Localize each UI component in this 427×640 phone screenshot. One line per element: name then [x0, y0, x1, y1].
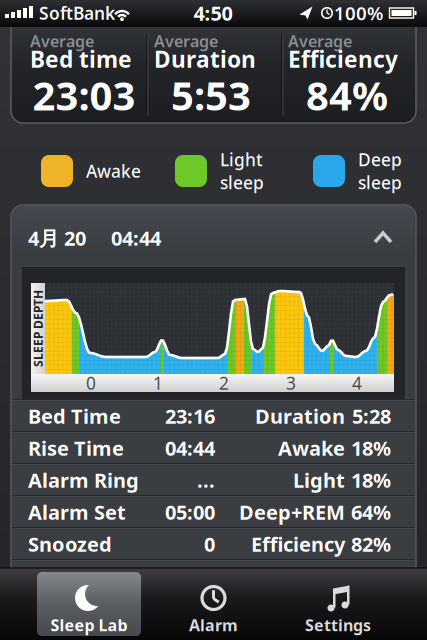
staticText: Snoozed — [28, 531, 112, 557]
staticText: 82% — [351, 531, 391, 557]
staticText: Alarm Ring — [28, 467, 139, 493]
button[interactable]: Sleep Lab — [37, 572, 141, 636]
staticText: 05:00 — [165, 499, 215, 525]
staticText: 100% — [334, 1, 383, 25]
staticText: Efficiency — [288, 44, 398, 74]
staticText: 5:28 — [352, 403, 391, 429]
staticText: 4 — [352, 371, 362, 394]
staticText: 4:50 — [193, 0, 232, 26]
staticText: 84% — [306, 68, 388, 121]
staticText: Deep+REM — [239, 499, 345, 525]
staticText: Awake — [86, 159, 141, 182]
staticText: Awake — [278, 435, 345, 461]
staticText: 04:44 — [165, 435, 215, 461]
staticText: 18% — [351, 435, 391, 461]
staticText: Deep sleep — [358, 148, 402, 194]
staticText: 1 — [153, 371, 163, 394]
staticText: ... — [197, 467, 215, 493]
staticText: 2 — [219, 371, 229, 394]
button[interactable]: 4月 20 04:44 — [11, 205, 416, 267]
staticText: Settings — [305, 614, 371, 636]
staticText: 0 — [204, 531, 215, 557]
staticText: SoftBank — [39, 1, 115, 24]
staticText: Alarm — [189, 614, 238, 636]
staticText: Duration — [154, 44, 256, 74]
staticText: Bed Time — [28, 403, 121, 429]
staticText: SLEEP DEPTH — [0, 320, 76, 336]
staticText: Rise Time — [28, 435, 124, 461]
staticText: Light sleep — [220, 148, 264, 194]
staticText: 3 — [286, 371, 296, 394]
staticText: Sleep Lab — [50, 614, 127, 636]
staticText: 4月 20 04:44 — [28, 225, 161, 251]
staticText: Efficiency — [251, 531, 345, 557]
staticText: 5:53 — [171, 68, 251, 121]
staticText: Light — [293, 467, 345, 493]
staticText: 0 — [86, 371, 96, 394]
staticText: Alarm Set — [28, 499, 126, 525]
button[interactable]: Settings — [286, 572, 390, 636]
staticText: 18% — [351, 467, 391, 493]
button[interactable]: Alarm — [161, 572, 265, 636]
staticText: Duration — [255, 403, 345, 429]
staticText: Average — [154, 30, 218, 52]
staticText: Average — [30, 30, 94, 52]
staticText: Bed time — [30, 44, 132, 74]
staticText: 23:03 — [32, 68, 135, 121]
staticText: Average — [288, 30, 352, 52]
staticText: 64% — [351, 499, 391, 525]
staticText: 23:16 — [165, 403, 215, 429]
